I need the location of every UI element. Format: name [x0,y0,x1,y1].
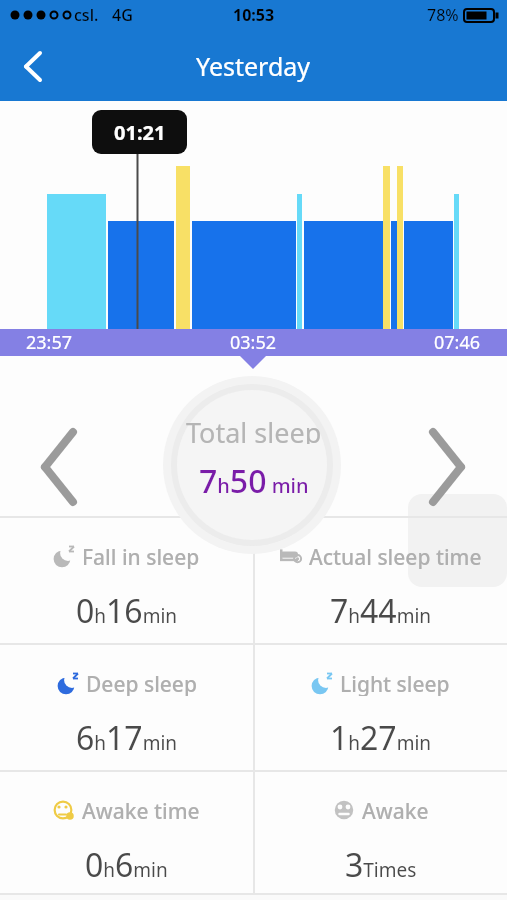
button[interactable]: Actual sleep time [254,517,507,643]
button[interactable]: Fall in sleep [0,517,253,643]
button[interactable]: Awake [254,771,507,897]
button[interactable]: Deep sleep [0,644,253,770]
staticText: Total sleep [186,414,322,444]
staticText: csl. [74,4,99,26]
staticText: 78% [427,4,459,26]
staticText: Fall in sleep [82,543,200,569]
staticText: 7h44min [330,589,432,625]
staticText: Deep sleep [86,670,197,696]
staticText: 4G [112,4,133,26]
staticText: Awake [362,797,429,823]
staticText: 01:21 [114,119,166,146]
staticText: 1h27min [330,716,432,752]
staticText: 07:46 [434,330,481,355]
staticText: 3Times [345,843,417,879]
staticText: Light sleep [340,670,450,696]
staticText: 03:52 [230,330,277,355]
staticText: 10:53 [233,4,275,26]
staticText: 0h16min [76,589,178,625]
staticText: 7h50 min [199,459,309,497]
staticText: 0h6min [85,843,168,879]
staticText: Yesterday [196,49,311,83]
button[interactable]: Awake time [0,771,253,897]
staticText: Actual sleep time [309,543,482,569]
staticText: 6h17min [76,716,178,752]
button[interactable] [420,424,474,510]
button[interactable] [170,380,336,546]
button[interactable] [32,424,86,510]
button[interactable]: Light sleep [254,644,507,770]
staticText: 23:57 [26,330,73,355]
button[interactable] [14,47,52,85]
staticText: Awake time [82,797,200,823]
